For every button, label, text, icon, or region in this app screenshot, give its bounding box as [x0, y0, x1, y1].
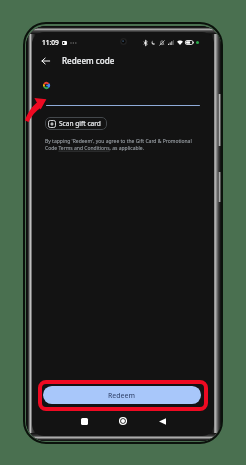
- button[interactable]: Back: [154, 413, 170, 429]
- staticText: Redeem code: [62, 55, 115, 66]
- staticText: 11:09: [42, 38, 59, 47]
- button[interactable]: Recent apps: [76, 413, 92, 429]
- staticText: By tapping 'Redeem', you agree to the Gi…: [45, 138, 197, 152]
- button[interactable]: Redeem: [43, 386, 201, 404]
- staticText: Scan gift card: [59, 119, 101, 128]
- staticText: Redeem: [108, 391, 136, 400]
- button[interactable]: Back: [36, 51, 55, 70]
- button[interactable]: Scan gift card: [45, 117, 107, 130]
- button[interactable]: Home: [115, 413, 131, 429]
